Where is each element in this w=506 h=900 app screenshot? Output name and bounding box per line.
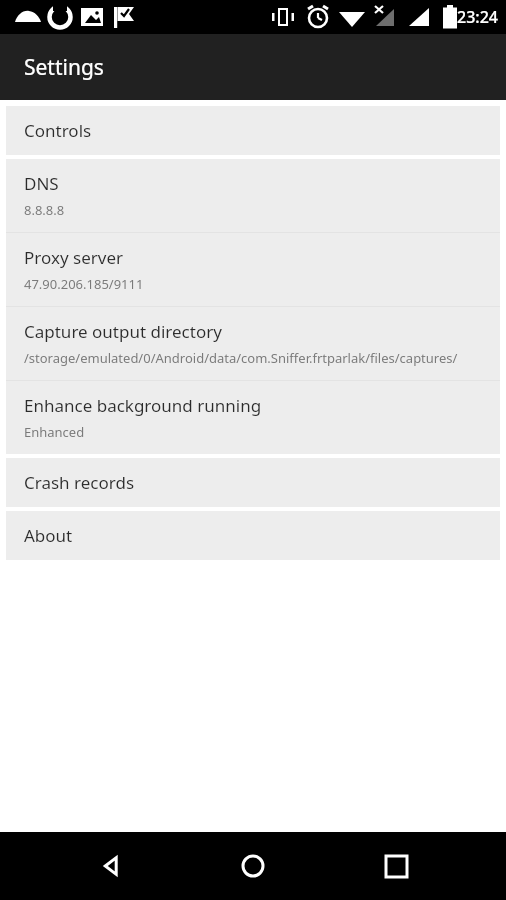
button[interactable]: Proxy server (6, 233, 500, 306)
button[interactable]: About (6, 511, 500, 560)
button[interactable]: Back (79, 834, 143, 898)
staticText: Enhance background running (24, 394, 262, 417)
button[interactable]: Enhance background running (6, 381, 500, 454)
staticText: /storage/emulated/0/Android/data/com.Sni… (24, 349, 458, 367)
staticText: Crash records (24, 471, 135, 494)
staticText: 47.90.206.185/9111 (24, 275, 144, 293)
staticText: Proxy server (24, 246, 123, 269)
button[interactable]: Controls (6, 106, 500, 155)
staticText: DNS (24, 172, 59, 195)
button[interactable]: Home (221, 834, 285, 898)
staticText: Capture output directory (24, 320, 222, 343)
button[interactable]: Recent apps (364, 834, 428, 898)
button[interactable]: DNS (6, 159, 500, 232)
staticText: 23:24 (457, 6, 498, 28)
staticText: Settings (24, 53, 104, 82)
staticText: About (24, 524, 73, 547)
staticText: 8.8.8.8 (24, 201, 65, 219)
button[interactable]: Capture output directory (6, 307, 500, 380)
button[interactable]: Crash records (6, 458, 500, 507)
staticText: Enhanced (24, 423, 85, 441)
staticText: Controls (24, 119, 92, 142)
